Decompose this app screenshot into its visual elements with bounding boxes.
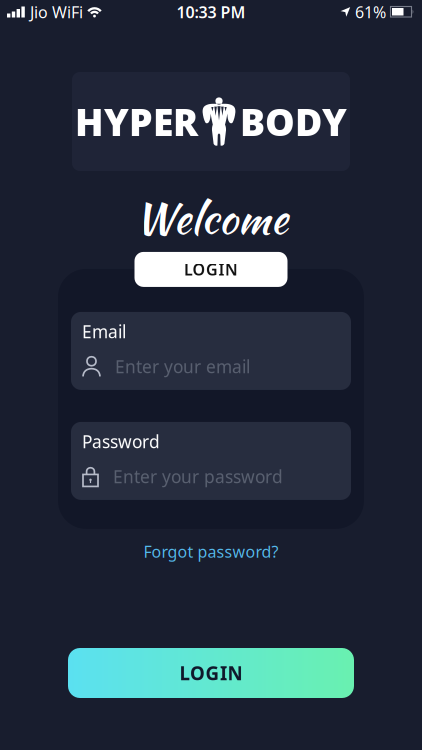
staticText: HYPER xyxy=(75,97,198,146)
staticText: Welcome xyxy=(134,187,287,249)
staticText: BODY xyxy=(240,97,347,146)
button[interactable]: LOGIN xyxy=(134,252,287,287)
staticText: Email xyxy=(82,320,126,343)
staticText: Password xyxy=(82,430,160,453)
button[interactable]: LOGIN xyxy=(68,648,354,698)
staticText: Jio WiFi xyxy=(30,1,83,23)
button[interactable]: Password xyxy=(71,422,351,500)
button[interactable]: Email xyxy=(71,312,351,390)
staticText: LOGIN xyxy=(184,259,238,280)
staticText: Forgot password? xyxy=(143,541,278,562)
staticText: Enter your email xyxy=(115,355,250,378)
staticText: 10:33 PM xyxy=(176,1,245,23)
button[interactable]: Forgot password? xyxy=(143,541,278,562)
staticText: Enter your password xyxy=(113,465,283,488)
staticText: 61% xyxy=(355,1,386,23)
staticText: LOGIN xyxy=(179,661,242,685)
